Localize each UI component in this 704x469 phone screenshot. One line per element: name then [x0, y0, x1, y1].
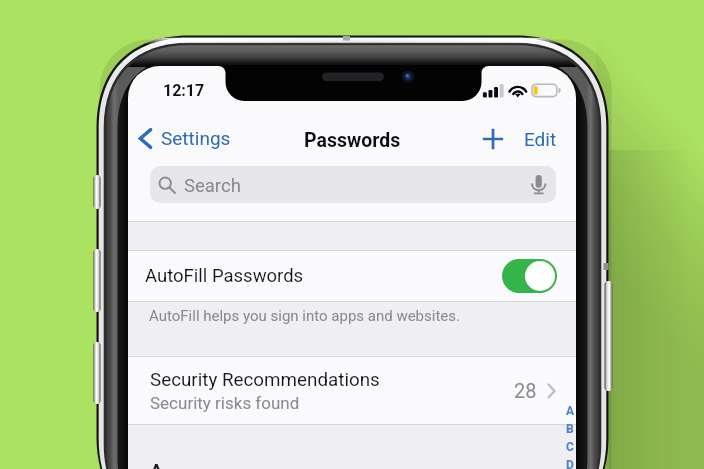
staticText: D — [566, 458, 574, 469]
button[interactable] — [502, 259, 557, 293]
button[interactable]: A — [565, 404, 575, 422]
button[interactable]: C — [565, 440, 575, 458]
staticText: A — [150, 459, 163, 469]
button[interactable]: Voice search — [529, 172, 548, 195]
staticText: AutoFill Passwords — [145, 265, 304, 287]
staticText: Settings — [161, 127, 231, 149]
button[interactable]: Search — [150, 166, 556, 203]
staticText: C — [566, 440, 574, 454]
button[interactable]: Security Recommendations — [128, 357, 576, 424]
staticText: Security Recommendations — [150, 369, 380, 391]
staticText: Edit — [524, 128, 557, 150]
staticText: B — [566, 422, 574, 436]
staticText: AutoFill helps you sign into apps and we… — [149, 307, 460, 325]
staticText: Search — [184, 175, 241, 197]
button[interactable]: Edit — [524, 128, 557, 150]
button[interactable]: D — [565, 458, 575, 469]
button[interactable]: B — [565, 422, 575, 440]
button[interactable]: Settings — [128, 123, 239, 153]
staticText: 12:17 — [163, 81, 205, 100]
staticText: Passwords — [304, 129, 401, 152]
staticText: A — [566, 404, 575, 418]
staticText: Security risks found — [150, 393, 300, 413]
button[interactable]: AutoFill Passwords — [128, 251, 576, 301]
button[interactable]: Add password — [480, 126, 506, 152]
staticText: 28 — [514, 379, 537, 402]
